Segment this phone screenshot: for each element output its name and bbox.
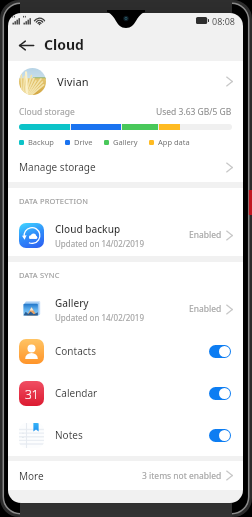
button[interactable]: Contacts toggle	[209, 345, 231, 358]
staticText: App data	[158, 137, 190, 147]
staticText: Cloud	[44, 35, 84, 54]
staticText: Calendar	[55, 386, 98, 400]
button[interactable]: Back	[19, 30, 34, 60]
staticText: 08:08	[212, 15, 236, 27]
button[interactable]: Notes	[8, 414, 243, 456]
button[interactable]: Contacts	[8, 330, 243, 372]
staticText: 3 items not enabled	[142, 470, 222, 482]
button[interactable]: Notes toggle	[209, 429, 231, 442]
staticText: Enabled	[189, 303, 222, 315]
button[interactable]: Manage storage	[8, 152, 243, 182]
staticText: More	[19, 469, 44, 483]
staticText: Enabled	[189, 229, 222, 241]
staticText: Backup	[28, 137, 54, 147]
staticText: 31	[25, 386, 39, 402]
staticText: Cloud storage	[19, 106, 75, 118]
staticText: Contacts	[55, 344, 96, 358]
staticText: DATA PROTECTION	[19, 196, 89, 206]
button[interactable]: Calendar toggle	[209, 387, 231, 400]
staticText: Updated on 14/02/2019	[55, 238, 144, 249]
staticText: Gallery	[55, 296, 89, 310]
staticText: Manage storage	[19, 160, 96, 174]
staticText: Updated on 14/02/2019	[55, 312, 144, 323]
button[interactable]: Vivian	[8, 61, 243, 102]
staticText: Notes	[55, 428, 83, 442]
staticText: Cloud backup	[55, 222, 121, 236]
staticText: Vivian	[57, 74, 89, 89]
staticText: DATA SYNC	[19, 270, 60, 280]
staticText: Gallery	[113, 137, 138, 147]
staticText: Drive	[74, 137, 93, 147]
button[interactable]: 31	[8, 372, 243, 414]
button[interactable]: Cloud backup	[8, 214, 243, 256]
button[interactable]: More	[8, 461, 243, 490]
staticText: Used 3.63 GB/5 GB	[156, 106, 232, 118]
button[interactable]: Gallery	[8, 288, 243, 330]
